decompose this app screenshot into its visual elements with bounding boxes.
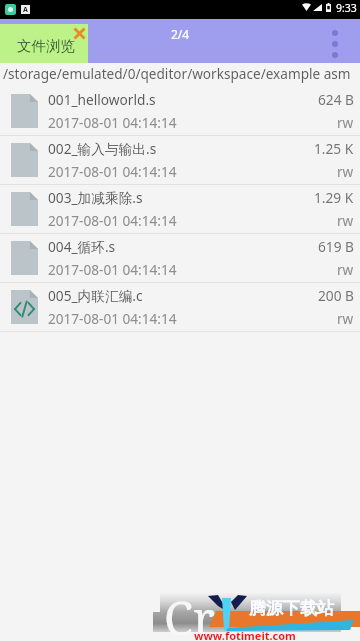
staticText: 2017-08-01 04:14:14 (48, 260, 177, 279)
staticText: 2017-08-01 04:14:14 (48, 162, 177, 181)
staticText: 001_helloworld.s (48, 90, 156, 109)
staticText: 2017-08-01 04:14:14 (48, 211, 177, 230)
staticText: rw (337, 260, 354, 279)
staticText: 004_循环.s (48, 237, 116, 256)
button[interactable]: Close tab (73, 27, 86, 40)
staticText: 2017-08-01 04:14:14 (48, 309, 177, 328)
staticText: 003_加减乘除.s (48, 188, 143, 207)
staticText: 002_输入与输出.s (48, 139, 157, 158)
staticText: 619 B (318, 237, 354, 256)
staticText: 624 B (318, 90, 354, 109)
button[interactable]: 002_输入与输出.s (0, 136, 360, 185)
button[interactable]: 001_helloworld.s (0, 87, 360, 136)
staticText: 2017-08-01 04:14:14 (48, 113, 177, 132)
staticText: 1.25 K (314, 139, 354, 158)
button[interactable]: More options (331, 30, 339, 58)
button[interactable]: 004_循环.s (0, 234, 360, 283)
staticText: Cr (164, 586, 215, 635)
staticText: 2/4 (171, 26, 190, 42)
staticText: 9:33 (336, 1, 357, 15)
staticText: www.fotimeit.com (194, 628, 296, 641)
staticText: 1.29 K (314, 188, 354, 207)
staticText: 文件浏览 (17, 37, 75, 55)
staticText: 腾源下载站 (249, 598, 334, 619)
staticText: rw (337, 211, 354, 230)
staticText: A (23, 5, 28, 14)
button[interactable]: 003_加减乘除.s (0, 185, 360, 234)
staticText: rw (337, 162, 354, 181)
button[interactable]: 005_内联汇编.c (0, 283, 360, 332)
staticText: 200 B (318, 286, 354, 305)
staticText: rw (337, 113, 354, 132)
staticText: rw (337, 309, 354, 328)
staticText: /storage/emulated/0/qeditor/workspace/ex… (3, 64, 351, 83)
staticText: 005_内联汇编.c (48, 286, 143, 305)
button[interactable]: 文件浏览 (0, 24, 88, 63)
